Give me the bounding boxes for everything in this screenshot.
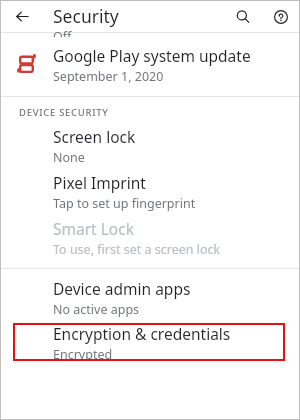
staticText: Google Play system update — [53, 45, 251, 66]
staticText: Security — [53, 4, 119, 28]
button[interactable]: Off — [0, 33, 300, 42]
staticText: No active apps — [53, 301, 140, 318]
staticText: Encryption & credentials — [53, 323, 231, 344]
staticText: None — [53, 149, 85, 166]
staticText: Encrypted — [53, 346, 113, 361]
button[interactable]: Help — [262, 0, 300, 33]
staticText: Pixel Imprint — [53, 172, 146, 193]
staticText: Screen lock — [53, 126, 136, 147]
button[interactable]: Device admin apps — [0, 276, 300, 320]
staticText: Tap to set up fingerprint — [53, 195, 196, 212]
button[interactable]: Encryption & credentials — [13, 323, 285, 361]
staticText: Off — [53, 28, 72, 37]
staticText: Smart Lock — [53, 218, 134, 239]
button[interactable]: Search — [224, 0, 262, 33]
button[interactable]: Screen lock — [0, 123, 300, 169]
button[interactable]: Pixel Imprint — [0, 169, 300, 215]
button[interactable]: Smart Lock — [0, 215, 300, 261]
button[interactable]: Back — [0, 0, 44, 33]
button[interactable]: Google Play system update — [0, 42, 300, 87]
staticText: September 1, 2020 — [53, 68, 164, 85]
staticText: To use, first set a screen lock — [53, 241, 221, 258]
staticText: Device admin apps — [53, 278, 191, 299]
staticText: DEVICE SECURITY — [19, 106, 109, 119]
